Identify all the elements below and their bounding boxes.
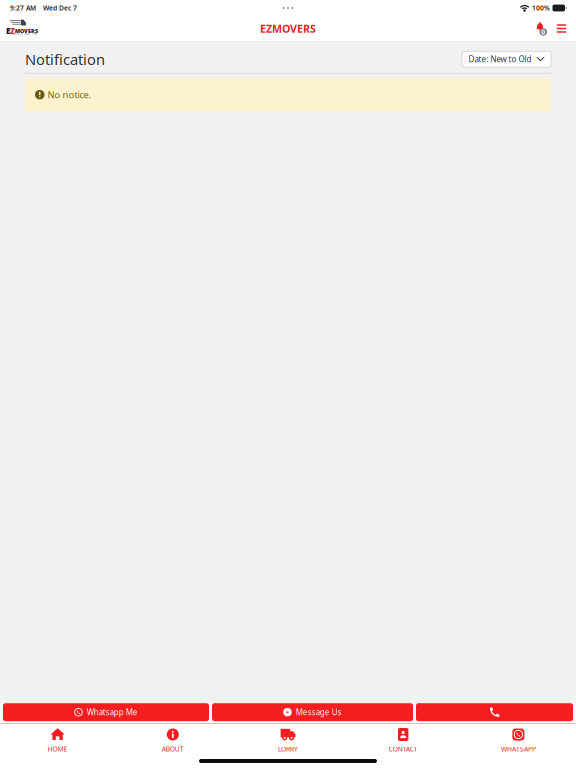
staticText: Message Us: [296, 707, 342, 717]
button[interactable]: Date: New to Old: [462, 51, 551, 67]
staticText: WHATSAPP: [501, 744, 536, 753]
staticText: MOVERS: [15, 27, 38, 35]
button[interactable]: ABOUT: [115, 724, 230, 754]
staticText: LORRY: [278, 744, 298, 753]
button[interactable]: EZ Movers: [6, 20, 36, 36]
button[interactable]: LORRY: [230, 724, 346, 754]
button[interactable]: CONTACT: [346, 724, 461, 754]
staticText: Wed Dec 7: [43, 4, 77, 12]
button[interactable]: Call: [416, 703, 573, 721]
staticText: Z: [10, 26, 15, 36]
staticText: EZMOVERS: [260, 21, 316, 36]
staticText: 9:27 AM: [10, 4, 36, 12]
staticText: 0: [541, 27, 545, 36]
staticText: No notice.: [47, 88, 91, 101]
staticText: moving made easy: [13, 32, 37, 36]
button[interactable]: WHATSAPP: [461, 724, 576, 754]
staticText: HOME: [48, 744, 68, 753]
staticText: E: [6, 26, 10, 36]
button[interactable]: HOME: [0, 724, 115, 754]
staticText: ABOUT: [162, 744, 184, 753]
staticText: Whatsapp Me: [87, 707, 138, 717]
staticText: 100%: [532, 4, 550, 12]
staticText: Notification: [25, 49, 105, 69]
button[interactable]: Menu: [555, 19, 568, 38]
staticText: CONTACT: [389, 744, 418, 753]
button[interactable]: Message Us: [212, 703, 413, 721]
button[interactable]: Whatsapp Me: [3, 703, 209, 721]
staticText: Date: New to Old: [468, 54, 531, 64]
button[interactable]: Notifications: [534, 19, 551, 38]
